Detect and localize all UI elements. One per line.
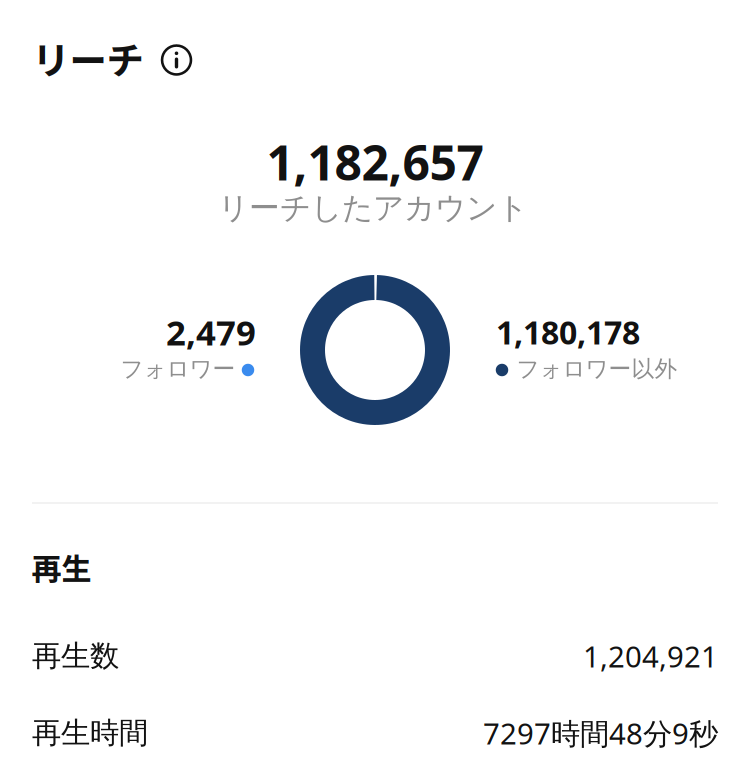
staticText: 1,204,921 [583,636,718,675]
staticText: フォロワー以外 [516,355,677,383]
staticText: 再生時間 [32,715,148,751]
staticText: 7297時間48分9秒 [483,713,718,752]
staticText: フォロワー [120,355,235,383]
staticText: リーチしたアカウント [218,189,528,227]
button[interactable]: リーチについて [154,38,198,82]
staticText: 再生数 [32,638,119,674]
button[interactable]: 再生時間 [32,705,718,761]
staticText: 2,479 [166,309,256,355]
button[interactable]: 再生数 [32,628,718,684]
staticText: リーチ [32,31,143,85]
staticText: 再生 [31,545,91,589]
staticText: 1,180,178 [496,311,640,353]
staticText: 1,182,657 [266,130,483,194]
